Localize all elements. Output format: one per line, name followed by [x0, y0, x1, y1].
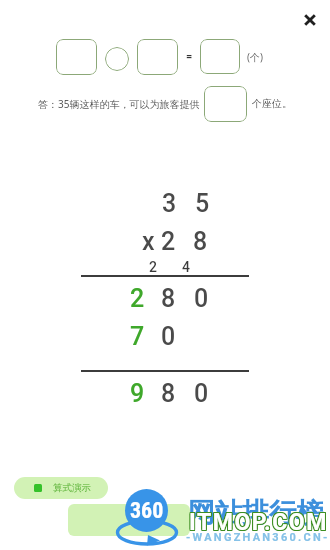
staticText: 9 [130, 379, 145, 408]
staticText: 2 [161, 227, 176, 256]
staticText: ITMOP.COM [188, 510, 327, 537]
staticText: ITMOP.COM [190, 510, 329, 537]
button[interactable] [137, 39, 178, 75]
staticText: = [186, 50, 193, 63]
staticText: 0 [194, 284, 209, 313]
button[interactable] [200, 39, 240, 74]
staticText: 8 [193, 227, 208, 256]
staticText: 网站排行榜 [188, 496, 323, 530]
staticText: 个座位。 [252, 97, 292, 110]
staticText: x [142, 227, 155, 256]
staticText: ITMOP.COM [189, 509, 328, 536]
staticText: ITMOP.COM [189, 510, 328, 537]
staticText: 算式演示 [53, 482, 91, 494]
button[interactable]: 算式演示 [14, 477, 108, 499]
staticText: 2 [130, 284, 145, 313]
button[interactable] [204, 86, 247, 122]
staticText: 答：35辆这样的车，可以为旅客提供 [38, 97, 200, 111]
staticText: 0 [161, 322, 176, 351]
button[interactable] [105, 47, 129, 71]
staticText: 0 [194, 379, 209, 408]
staticText: 3 [162, 189, 177, 218]
staticText: (个) [247, 50, 263, 64]
button[interactable]: Close [294, 4, 326, 36]
staticText: ITMOP.COM [188, 508, 327, 535]
staticText: 7 [130, 322, 145, 351]
staticText: -WANGZHAN360.CN- [186, 531, 330, 544]
staticText: 8 [161, 379, 176, 408]
staticText: ITMOP.COM [189, 508, 328, 535]
staticText: 4 [182, 259, 190, 275]
staticText: 5 [195, 189, 210, 218]
staticText: ITMOP.COM [190, 509, 329, 536]
staticText: 360 [130, 498, 164, 524]
staticText: ITMOP.COM [188, 509, 327, 536]
staticText: 8 [161, 284, 176, 313]
staticText: 2 [149, 259, 157, 275]
button[interactable] [56, 39, 97, 75]
staticText: ITMOP.COM [190, 508, 329, 535]
